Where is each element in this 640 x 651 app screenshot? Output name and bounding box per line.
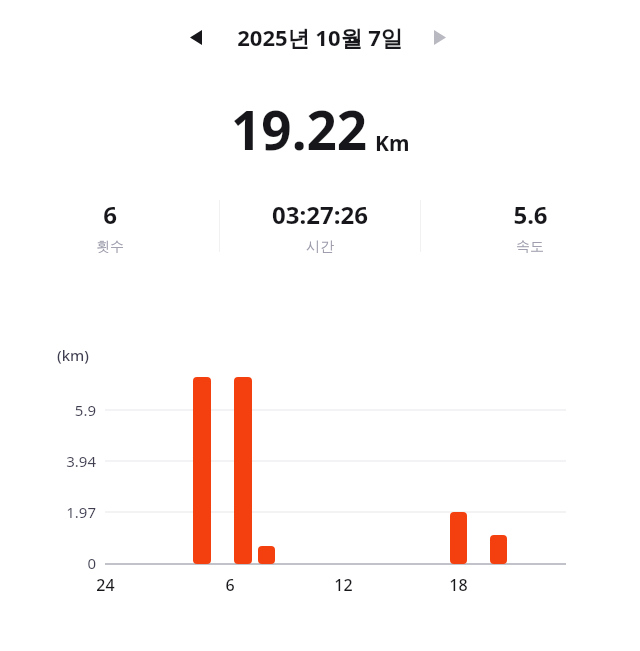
staticText: 03:27:26 <box>272 198 368 231</box>
staticText: 0 <box>87 553 96 573</box>
staticText: 12 <box>334 574 353 596</box>
staticText: 5.6 <box>513 198 548 231</box>
staticText: Km <box>375 129 410 158</box>
staticText: 6 <box>225 574 235 596</box>
button[interactable]: 5.6 <box>420 198 640 256</box>
button[interactable]: 6 <box>0 198 219 256</box>
button[interactable]: Previous day <box>176 18 216 56</box>
staticText: 3.94 <box>66 451 96 471</box>
staticText: 6 <box>103 198 117 231</box>
staticText: 시간 <box>306 238 334 256</box>
staticText: 2025년 10월 7일 <box>237 22 403 52</box>
staticText: (km) <box>57 345 89 365</box>
staticText: 18 <box>449 574 468 596</box>
staticText: 24 <box>96 574 115 596</box>
staticText: 횟수 <box>96 238 124 256</box>
staticText: 19.22 <box>231 93 368 165</box>
staticText: 속도 <box>516 238 544 256</box>
staticText: 1.97 <box>66 502 96 522</box>
staticText: 5.9 <box>74 400 96 420</box>
button[interactable]: Next day <box>420 18 460 56</box>
button[interactable]: 03:27:26 <box>219 198 420 256</box>
button[interactable]: 2025년 10월 7일 <box>232 20 408 54</box>
